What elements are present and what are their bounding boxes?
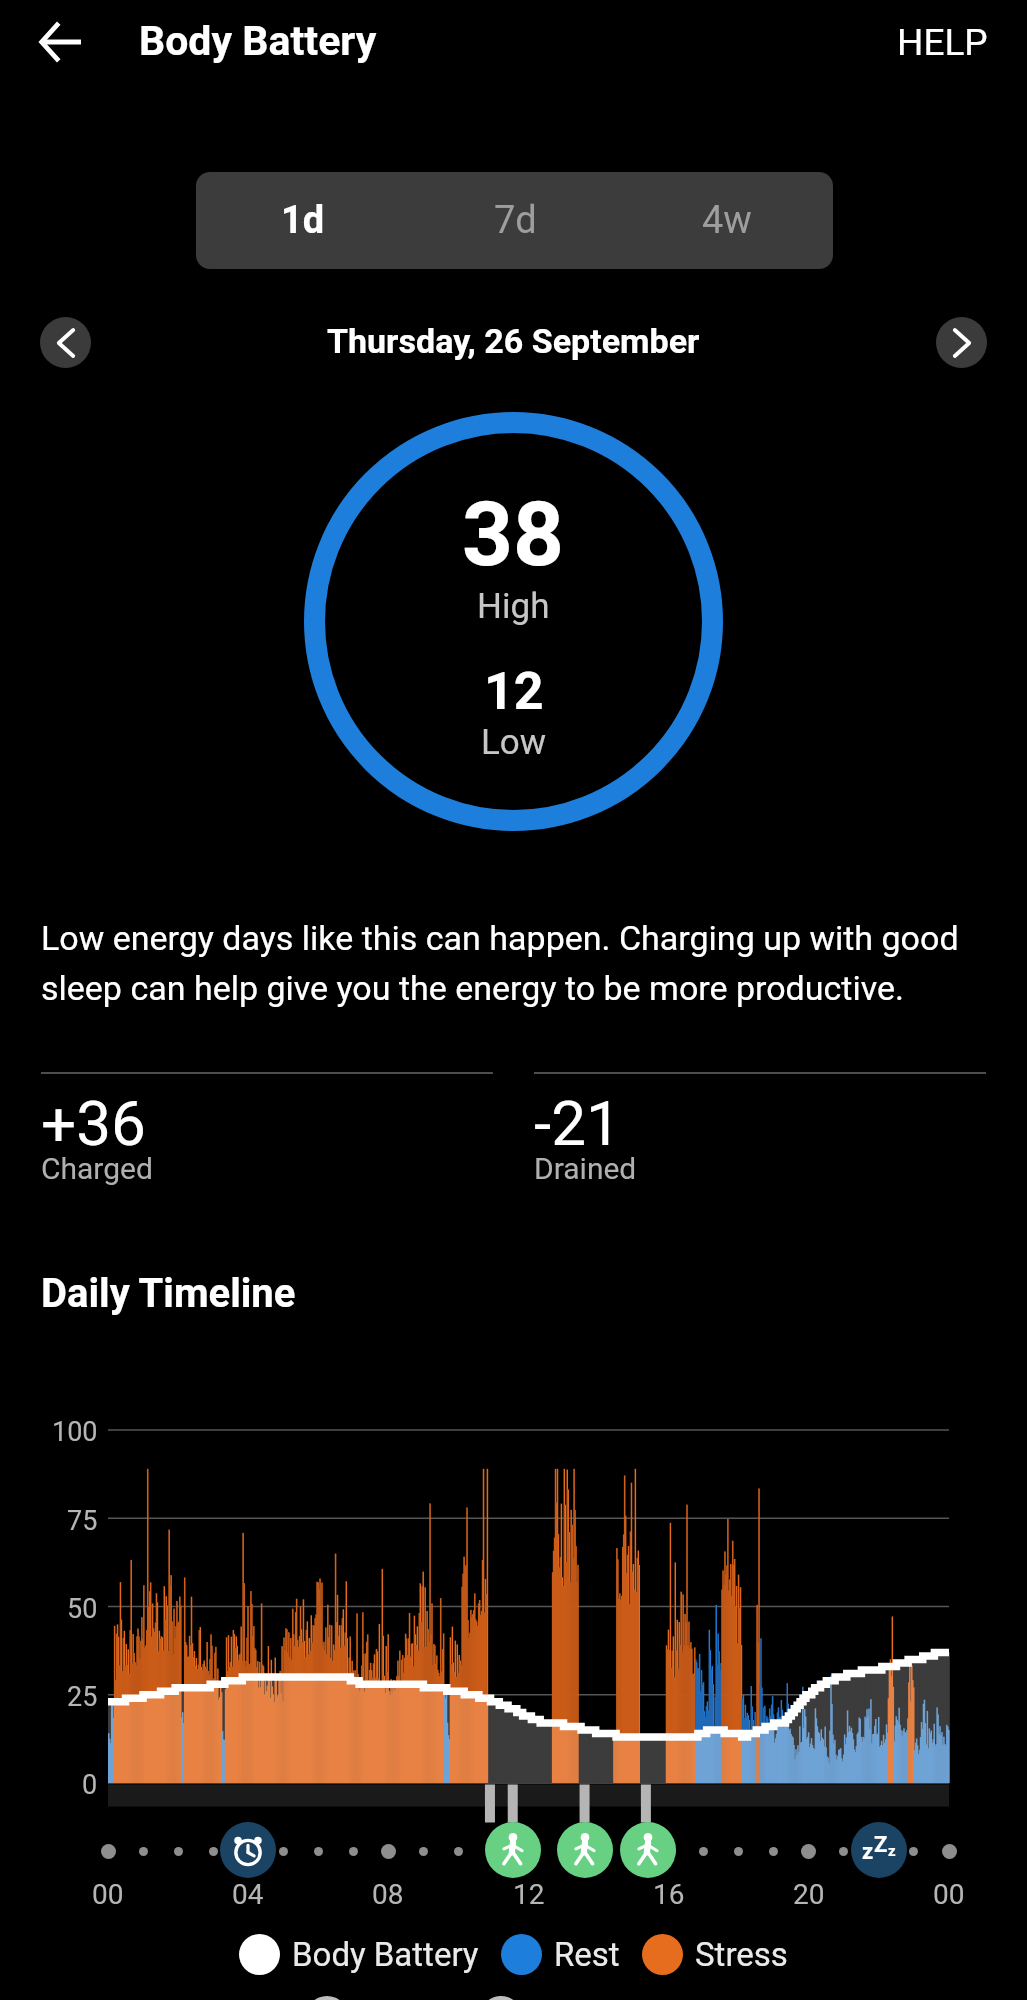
button[interactable]: 1d	[196, 172, 409, 269]
staticText: Low	[481, 722, 547, 763]
staticText: 00	[92, 1878, 124, 1911]
staticText: 4w	[702, 198, 752, 243]
staticText: Stress	[695, 1935, 788, 1974]
button[interactable]: Walk	[620, 1822, 676, 1878]
staticText: 7d	[494, 198, 537, 243]
staticText: 12	[513, 1878, 545, 1911]
staticText: 0	[82, 1769, 98, 1801]
staticText: Charged	[41, 1151, 153, 1186]
staticText: 00	[933, 1878, 965, 1911]
button[interactable]: 4w	[621, 172, 833, 269]
staticText: Drained	[534, 1151, 637, 1186]
staticText: Body Battery	[292, 1935, 479, 1974]
staticText: z	[862, 1839, 874, 1865]
staticText: 25	[67, 1681, 98, 1713]
staticText: 08	[372, 1878, 404, 1911]
staticText: Z	[874, 1832, 888, 1858]
staticText: 1d	[281, 198, 325, 243]
button[interactable]: Back	[20, 2, 100, 82]
button[interactable]: Walk	[485, 1822, 541, 1878]
staticText: z	[888, 1842, 896, 1860]
staticText: High	[477, 586, 550, 627]
staticText: Thursday, 26 September	[327, 321, 700, 361]
staticText: Low energy days like this can happen. Ch…	[41, 918, 1001, 1009]
staticText: Rest	[554, 1935, 620, 1974]
button[interactable]: HELP	[875, 0, 1010, 84]
button[interactable]: Next day	[936, 317, 987, 368]
staticText: 16	[653, 1878, 685, 1911]
staticText: Daily Timeline	[41, 1270, 296, 1317]
button[interactable]: Alarm	[220, 1822, 276, 1878]
staticText: 20	[793, 1878, 825, 1911]
staticText: Body Battery	[139, 17, 377, 65]
staticText: 12	[484, 661, 544, 722]
button[interactable]: Previous day	[40, 317, 91, 368]
staticText: 04	[232, 1878, 264, 1911]
staticText: -21	[534, 1087, 621, 1160]
button[interactable]: 7d	[409, 172, 621, 269]
staticText: 50	[67, 1593, 98, 1625]
staticText: 75	[67, 1505, 98, 1537]
button[interactable]: Walk	[557, 1822, 613, 1878]
staticText: 38	[462, 482, 565, 586]
button[interactable]: Sleep	[851, 1822, 907, 1878]
staticText: 100	[52, 1416, 98, 1448]
staticText: HELP	[897, 21, 988, 64]
staticText: +36	[41, 1087, 146, 1160]
